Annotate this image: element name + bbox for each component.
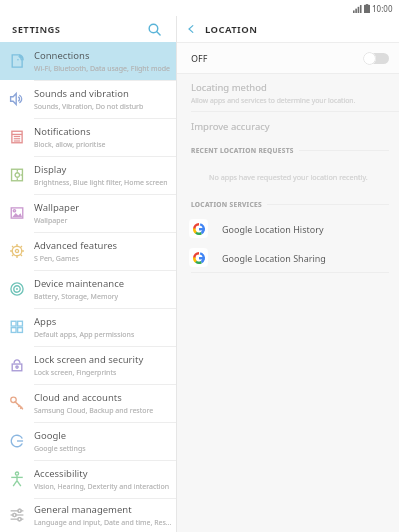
staticText: LOCATION [205, 23, 258, 36]
button[interactable]: Lock screen and security [0, 346, 176, 384]
staticText: Accessibility [34, 467, 88, 480]
staticText: Notifications [34, 125, 91, 138]
button[interactable]: Locating method [177, 74, 399, 111]
button[interactable]: Wallpaper [0, 194, 176, 232]
staticText: Default apps, App permissions [34, 330, 135, 340]
staticText: LOCATION SERVICES [191, 200, 262, 209]
staticText: RECENT LOCATION REQUESTS [191, 146, 294, 155]
button[interactable]: Advanced features [0, 232, 176, 270]
button[interactable]: Apps [0, 308, 176, 346]
button[interactable]: OFF [177, 43, 399, 73]
staticText: Improve accuracy [191, 120, 270, 133]
staticText: Google Location Sharing [222, 252, 326, 264]
staticText: Block, allow, prioritise [34, 140, 106, 150]
staticText: Sounds, Vibration, Do not disturb [34, 102, 144, 112]
button[interactable]: Search [144, 19, 164, 39]
staticText: Wallpaper [34, 201, 80, 214]
button[interactable]: Device maintenance [0, 270, 176, 308]
staticText: Connections [34, 49, 90, 62]
button[interactable]: Google [0, 422, 176, 460]
staticText: Battery, Storage, Memory [34, 292, 119, 302]
staticText: Language and input, Date and time, Res… [34, 518, 172, 528]
staticText: Google Location History [222, 223, 324, 235]
staticText: Apps [34, 315, 57, 328]
staticText: 10:00 [372, 3, 393, 14]
staticText: Locating method [191, 81, 267, 94]
button[interactable]: Connections [0, 42, 176, 80]
staticText: Display [34, 163, 67, 176]
staticText: Brightness, Blue light filter, Home scre… [34, 178, 168, 188]
button[interactable]: Improve accuracy [177, 112, 399, 140]
staticText: Lock screen, Fingerprints [34, 368, 117, 378]
staticText: Wallpaper [34, 216, 68, 226]
staticText: SETTINGS [12, 23, 61, 36]
staticText: Google settings [34, 444, 86, 454]
button[interactable]: Sounds and vibration [0, 80, 176, 118]
button[interactable]: Cloud and accounts [0, 384, 176, 422]
staticText: Google [34, 429, 67, 442]
staticText: OFF [191, 52, 208, 64]
staticText: General management [34, 503, 132, 516]
button[interactable]: Notifications [0, 118, 176, 156]
button[interactable]: General management [0, 498, 176, 532]
button[interactable]: Accessibility [0, 460, 176, 498]
staticText: Allow apps and services to determine you… [191, 96, 356, 105]
button[interactable]: Google Location Sharing [177, 243, 399, 272]
staticText: Lock screen and security [34, 353, 144, 366]
staticText: Vision, Hearing, Dexterity and interacti… [34, 482, 170, 492]
staticText: Sounds and vibration [34, 87, 129, 100]
staticText: Wi-Fi, Bluetooth, Data usage, Flight mod… [34, 64, 171, 74]
staticText: Device maintenance [34, 277, 125, 290]
staticText: Samsung Cloud, Backup and restore [34, 406, 154, 416]
staticText: Cloud and accounts [34, 391, 122, 404]
button[interactable]: Display [0, 156, 176, 194]
staticText: Advanced features [34, 239, 118, 252]
staticText: S Pen, Games [34, 254, 79, 264]
button[interactable]: Back [177, 16, 205, 42]
button[interactable]: Google Location History [177, 214, 399, 243]
staticText: No apps have requested your location rec… [209, 172, 368, 182]
